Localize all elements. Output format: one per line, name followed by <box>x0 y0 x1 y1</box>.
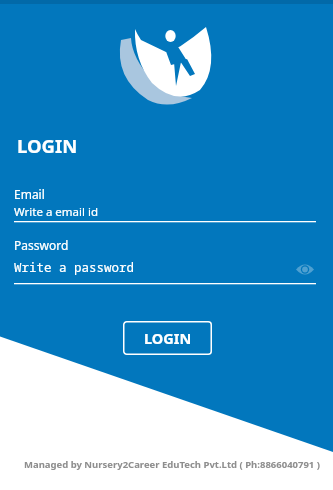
staticText: Password <box>14 237 69 253</box>
staticText: Email <box>14 186 45 202</box>
staticText: LOGIN <box>144 328 192 348</box>
staticText: Write a email id <box>14 204 99 220</box>
staticText: Write a password <box>14 259 135 276</box>
staticText: LOGIN <box>17 133 78 158</box>
button[interactable]: Email <box>14 186 316 222</box>
button[interactable]: LOGIN <box>123 321 212 355</box>
button[interactable] <box>293 258 317 281</box>
button[interactable]: Password <box>14 237 316 283</box>
staticText: Managed by Nursery2Career EduTech Pvt.Lt… <box>24 458 320 471</box>
